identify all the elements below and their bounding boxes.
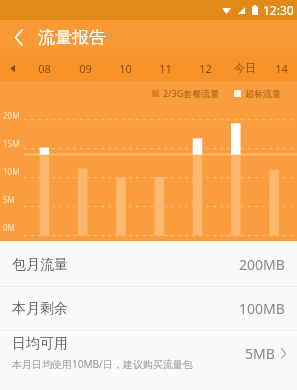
staticText: 100MB <box>239 299 285 318</box>
button[interactable]: Back <box>0 20 38 55</box>
staticText: 超标流量 <box>245 88 281 99</box>
staticText: 08 <box>38 61 51 76</box>
staticText: 200MB <box>239 255 285 274</box>
staticText: 日均可用 <box>12 335 68 353</box>
staticText: 11 <box>159 61 172 76</box>
staticText: 5MB <box>245 344 275 363</box>
button[interactable]: 本月剩余 <box>0 287 297 330</box>
staticText: 10 <box>119 61 132 76</box>
staticText: 流量报告 <box>38 27 106 48</box>
staticText: 今日 <box>234 61 256 75</box>
staticText: 包月流量 <box>12 256 68 274</box>
button[interactable]: 今日 <box>225 55 265 81</box>
staticText: 0M <box>3 222 15 233</box>
button[interactable]: 10 <box>105 55 145 81</box>
button[interactable]: 14 <box>265 55 297 81</box>
staticText: 12:30 <box>263 2 294 18</box>
staticText: 2/3G套餐流量 <box>163 87 220 99</box>
staticText: 15M <box>3 138 20 149</box>
button[interactable]: 12 <box>185 55 225 81</box>
staticText: 10M <box>3 166 20 177</box>
button[interactable]: 11 <box>145 55 185 81</box>
button[interactable]: 包月流量 <box>0 243 297 286</box>
staticText: 12 <box>199 61 212 76</box>
staticText: 20M <box>3 110 20 121</box>
button[interactable]: 08 <box>24 55 65 81</box>
staticText: 5M <box>3 194 15 205</box>
button[interactable]: 日均可用 <box>0 331 297 375</box>
button[interactable]: Previous days <box>0 55 24 81</box>
button[interactable]: 09 <box>65 55 105 81</box>
staticText: 14 <box>275 61 288 76</box>
staticText: 本月剩余 <box>12 300 68 318</box>
staticText: 09 <box>79 61 92 76</box>
staticText: 本月日均使用10MB/日，建议购买流量包 <box>12 357 193 371</box>
